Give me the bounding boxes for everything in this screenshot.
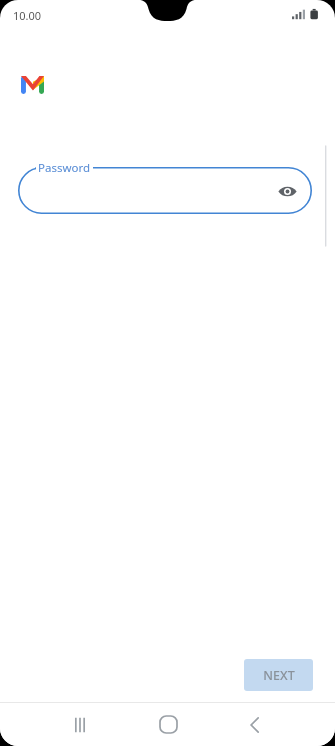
button[interactable]: Recent apps [58, 703, 102, 746]
button[interactable]: Home [146, 703, 190, 746]
button[interactable]: Show password [274, 178, 300, 204]
button[interactable]: NEXT [244, 659, 313, 691]
button[interactable]: Back [233, 703, 277, 746]
staticText: Password [38, 160, 91, 176]
button[interactable]: Password [18, 167, 312, 214]
staticText: NEXT [263, 667, 295, 684]
staticText: 10.00 [13, 8, 42, 23]
